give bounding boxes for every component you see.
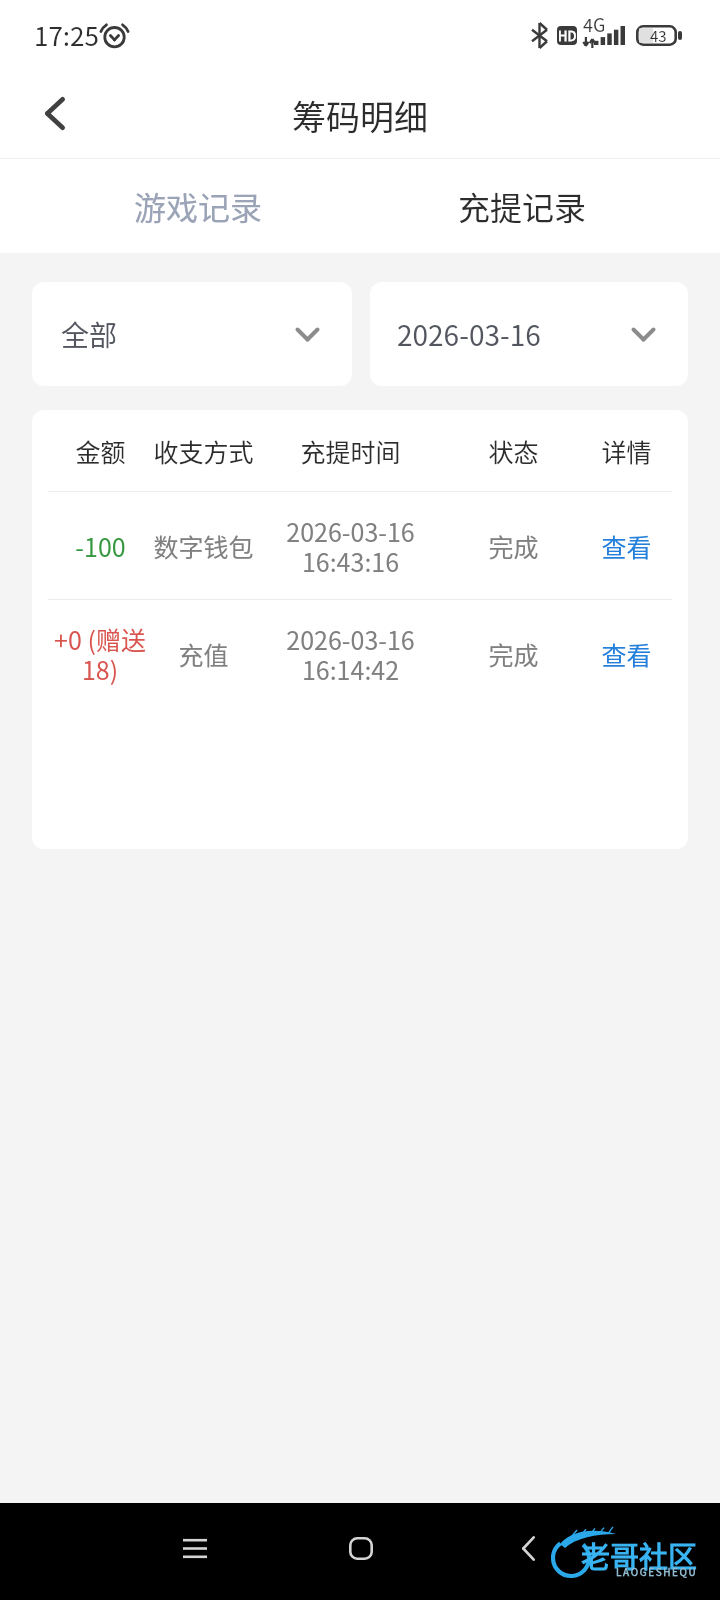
staticText: 完成 [488,528,539,564]
staticText: HD [558,26,577,45]
staticText: 43 [650,25,667,46]
staticText: 游戏记录 [134,183,263,229]
button[interactable]: Home [301,1503,421,1600]
staticText: 老哥社区 [581,1534,698,1576]
staticText: 收支方式 [153,433,254,469]
staticText: 2026-03-16 16:14:42 [286,621,415,687]
staticText: 2026-03-16 [397,314,541,355]
staticText: 完成 [488,636,539,672]
staticText: 数字钱包 [153,528,254,564]
staticText: 金额 [75,433,126,469]
button[interactable]: 2026-03-16 [370,282,688,386]
staticText: +0 (赠送 18) [40,621,160,687]
staticText: LAOGESHEQU [616,1564,698,1578]
staticText: 详情 [601,433,652,469]
button[interactable]: 充提记录 [360,159,684,253]
button[interactable]: 游戏记录 [36,159,360,253]
staticText: -100 [75,528,126,564]
button[interactable]: 查看 [571,636,681,672]
staticText: 全部 [61,314,118,355]
staticText: 充提时间 [300,433,401,469]
button[interactable]: Back [0,72,109,159]
button[interactable]: Back [478,1503,578,1600]
staticText: 查看 [601,528,652,564]
staticText: 查看 [601,636,652,672]
button[interactable]: Recent apps [135,1503,255,1600]
button[interactable]: 全部 [32,282,352,386]
staticText: 状态 [488,433,539,469]
staticText: 4G [583,11,606,37]
staticText: 2026-03-16 16:43:16 [286,513,415,579]
staticText: 筹码明细 [292,91,428,140]
button[interactable]: 查看 [571,528,681,564]
staticText: 充提记录 [458,183,587,229]
staticText: 17:25 [34,16,99,54]
staticText: 充值 [178,636,229,672]
